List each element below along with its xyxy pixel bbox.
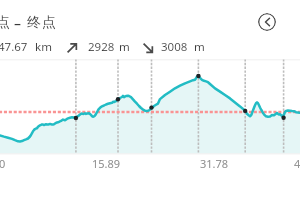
staticText: 终 [27, 14, 41, 32]
staticText: 0 [0, 156, 6, 171]
staticText: m [194, 39, 205, 55]
staticText: 点 [42, 14, 56, 32]
staticText: 点 [0, 14, 10, 32]
staticText: km [35, 39, 52, 55]
button[interactable]: Back [258, 13, 276, 31]
staticText: 15.89 [92, 156, 121, 171]
staticText: – [14, 14, 21, 33]
staticText: m [119, 39, 130, 55]
staticText: 2928 [88, 39, 115, 55]
staticText: 47.67 [294, 156, 300, 171]
staticText: 3008 [161, 39, 188, 55]
staticText: 31.78 [200, 156, 229, 171]
staticText: 47.67 [0, 39, 28, 55]
